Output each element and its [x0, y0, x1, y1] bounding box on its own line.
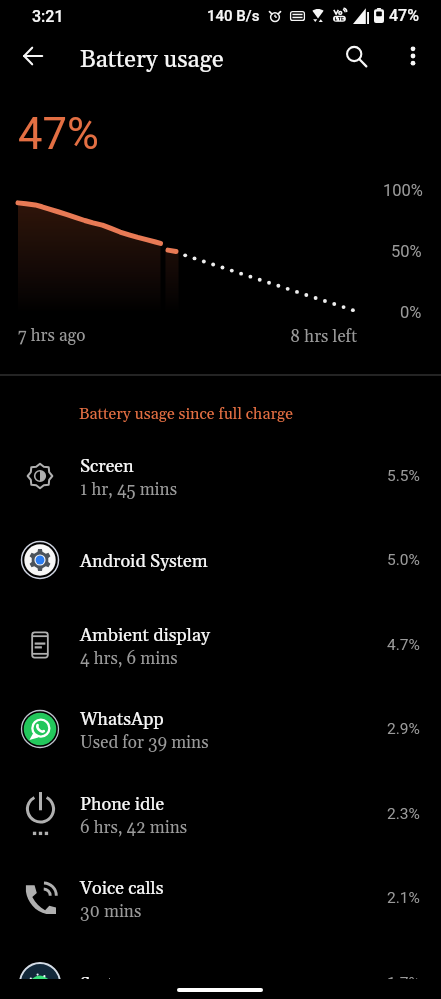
button[interactable]: More options [390, 33, 436, 79]
button[interactable]: Phone idle [0, 771, 441, 856]
button[interactable]: Ambient display [0, 602, 441, 687]
staticText: Phone idle [80, 793, 165, 816]
staticText: 47% [18, 109, 99, 160]
button[interactable]: Back [10, 33, 56, 79]
staticText: 5.5% [387, 467, 420, 485]
button[interactable]: Voice calls [0, 855, 441, 940]
staticText: 1 hr, 45 mins [80, 479, 177, 501]
staticText: WhatsApp [80, 708, 164, 731]
staticText: 1.7% [387, 974, 420, 992]
staticText: 100% [383, 181, 423, 200]
staticText: Voice calls [80, 877, 164, 900]
staticText: 8 hrs left [290, 326, 358, 348]
staticText: 5.0% [387, 551, 420, 569]
staticText: 6 hrs, 42 mins [80, 817, 188, 839]
staticText: 47% [389, 6, 419, 25]
staticText: 4 hrs, 6 mins [80, 648, 178, 670]
button[interactable]: Android System [0, 517, 441, 602]
staticText: Ambient display [80, 624, 210, 647]
staticText: Used for 39 mins [80, 732, 209, 754]
staticText: 50% [391, 242, 422, 261]
button[interactable]: WhatsApp [0, 686, 441, 771]
staticText: Screen [80, 455, 134, 478]
staticText: Battery usage [80, 45, 224, 75]
staticText: 2.9% [387, 720, 420, 738]
staticText: Android System [80, 550, 208, 573]
button[interactable]: Screen [0, 433, 441, 518]
staticText: 7 hrs ago [18, 325, 86, 347]
staticText: Battery usage since full charge [79, 404, 293, 424]
staticText: 30 mins [80, 901, 142, 923]
staticText: 2.3% [387, 805, 420, 823]
staticText: 3:21 [32, 7, 64, 26]
staticText: 140 B/s [207, 7, 260, 25]
button[interactable]: System apps [0, 940, 441, 999]
staticText: 4.7% [387, 636, 420, 654]
staticText: 2.1% [387, 889, 420, 907]
staticText: 0% [400, 303, 422, 322]
staticText: System apps [80, 973, 180, 996]
button[interactable]: Search [333, 33, 379, 79]
